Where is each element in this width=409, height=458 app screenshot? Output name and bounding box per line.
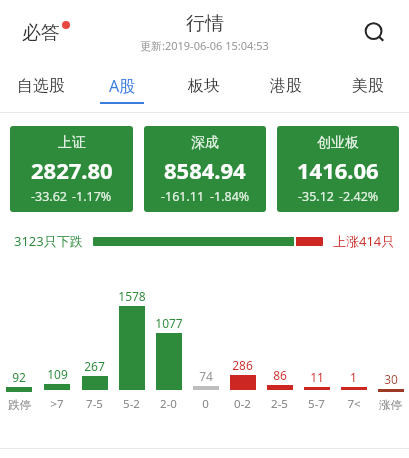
staticText: 上证 [58,134,86,152]
staticText: 创业板 [317,134,359,152]
staticText: -35.12 [298,188,334,205]
button[interactable]: 创业板 [277,126,399,212]
staticText: 涨停 [379,398,402,412]
staticText: 0-2 [234,396,251,412]
button[interactable]: 30 [372,274,409,420]
staticText: >7 [50,396,64,412]
staticText: 板块 [188,76,220,96]
button[interactable]: 上证 [10,126,133,212]
staticText: 自选股 [17,76,65,96]
button[interactable]: 11 [298,274,335,420]
staticText: -2.42% [339,188,379,205]
staticText: -1.84% [210,188,250,205]
button[interactable]: 267 [76,274,113,420]
button[interactable]: 美股 [327,65,409,113]
staticText: -161.11 [161,188,205,205]
button[interactable]: 1077 [150,274,187,420]
staticText: 上涨414只 [333,232,395,250]
staticText: A股 [109,75,136,97]
staticText: 11 [310,369,324,385]
staticText: 92 [12,369,26,385]
button[interactable]: 必答 [22,21,70,45]
button[interactable]: 109 [38,274,76,420]
staticText: 美股 [352,76,384,96]
button[interactable]: 板块 [163,65,245,113]
button[interactable]: 深成 [144,126,266,212]
staticText: 5-7 [308,396,325,412]
staticText: 2-0 [160,396,177,412]
button[interactable]: 1578 [113,274,150,420]
staticText: 2827.80 [31,155,113,185]
staticText: 7< [347,396,361,412]
button[interactable]: 286 [224,274,261,420]
staticText: 1578 [118,288,146,304]
button[interactable]: 74 [187,274,224,420]
staticText: 8584.94 [164,155,246,185]
staticText: 7-5 [86,396,103,412]
staticText: 深成 [191,134,219,152]
staticText: 港股 [270,76,302,96]
staticText: -33.62 [31,188,67,205]
staticText: 286 [232,357,253,373]
button[interactable]: 92 [0,274,38,420]
staticText: 跌停 [8,398,31,412]
staticText: 267 [84,358,105,374]
staticText: 5-2 [123,396,140,412]
button[interactable]: Search [355,13,395,53]
staticText: 1 [350,369,357,385]
staticText: 74 [199,368,213,384]
staticText: 1416.06 [297,155,379,185]
staticText: 30 [384,371,398,387]
staticText: 86 [273,367,287,383]
button[interactable]: 86 [261,274,298,420]
staticText: 更新:2019-06-06 15:04:53 [140,38,269,53]
staticText: 3123只下跌 [14,232,83,250]
staticText: -1.17% [72,188,112,205]
button[interactable]: A股 [81,65,163,113]
staticText: 行情 [186,12,224,36]
staticText: 必答 [22,21,60,45]
staticText: 1077 [155,315,183,331]
staticText: 0 [202,396,209,412]
button[interactable]: 1 [335,274,372,420]
button[interactable]: 自选股 [0,65,81,113]
staticText: 109 [47,366,68,382]
staticText: 2-5 [271,396,288,412]
button[interactable]: 港股 [245,65,327,113]
